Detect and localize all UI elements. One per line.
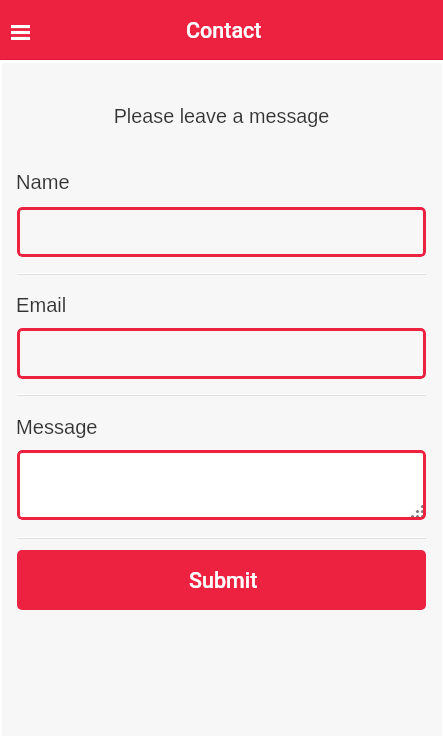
button[interactable]: Open navigation menu <box>4 16 37 49</box>
button[interactable] <box>17 450 426 520</box>
button[interactable] <box>17 328 426 379</box>
staticText: Email <box>16 294 67 316</box>
staticText: Name <box>16 171 70 193</box>
button[interactable] <box>17 207 426 257</box>
button[interactable]: Submit <box>17 550 426 610</box>
staticText: Please leave a message <box>0 105 443 127</box>
staticText: Message <box>16 416 98 438</box>
staticText: Submit <box>189 568 258 593</box>
staticText: Contact <box>186 18 262 43</box>
